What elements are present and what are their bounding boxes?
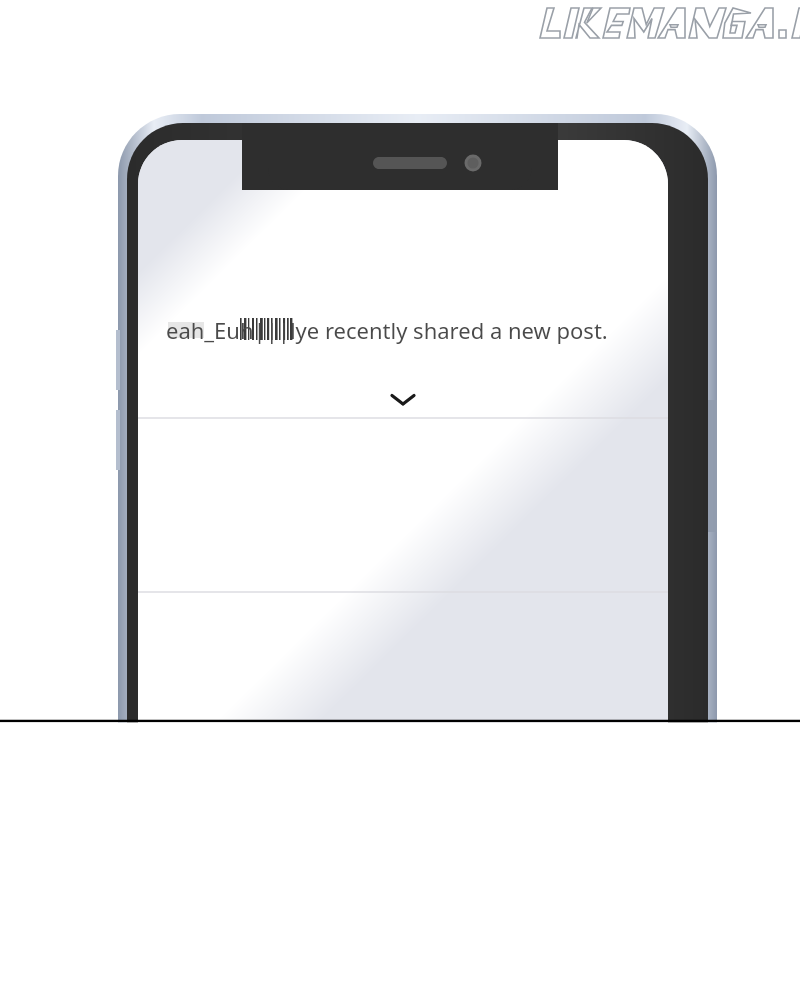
button[interactable]: eah_Euh|||lye recently shared a new post… (0, 0, 800, 1000)
button[interactable]: Expand post (383, 385, 423, 415)
button[interactable]: eah_Euh|||lye recently shared a new post… (166, 315, 666, 345)
